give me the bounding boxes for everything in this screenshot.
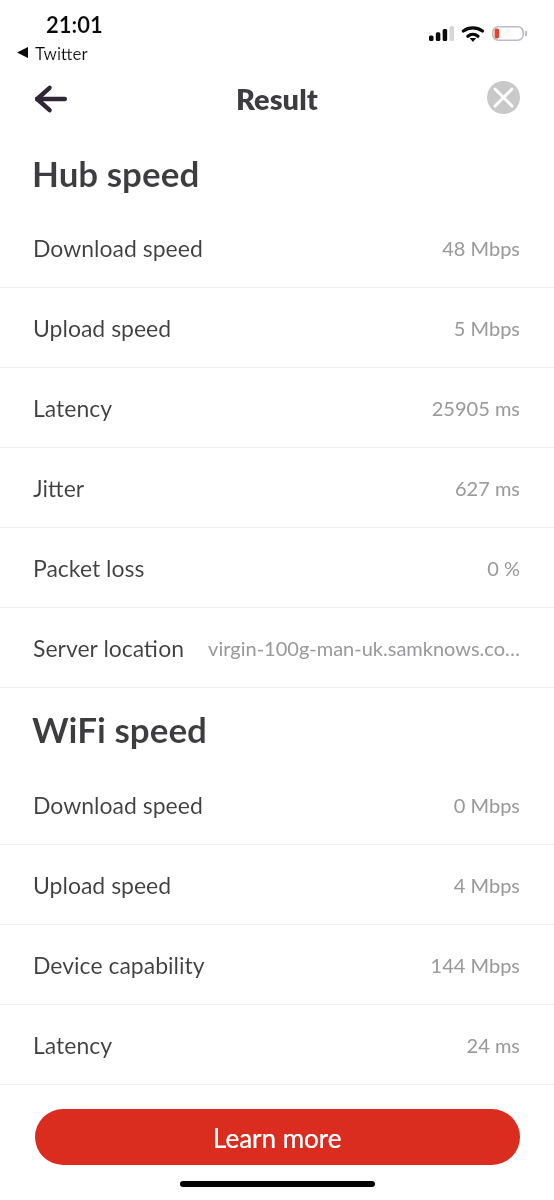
staticText: Jitter (33, 474, 85, 502)
staticText: Device capability (33, 951, 205, 979)
button[interactable]: Upload speed (0, 288, 554, 367)
staticText: Download speed (33, 791, 203, 819)
button[interactable]: Close (487, 81, 520, 114)
staticText: 0 % (487, 556, 520, 580)
staticText: Download speed (33, 234, 203, 262)
staticText: Twitter (35, 43, 88, 63)
staticText: 4 Mbps (453, 873, 520, 897)
staticText: Packet loss (33, 554, 145, 582)
staticText: 21:01 (46, 11, 103, 37)
staticText: 0 Mbps (453, 793, 520, 817)
staticText: 24 ms (466, 1033, 520, 1057)
staticText: Upload speed (33, 314, 172, 342)
staticText: 48 Mbps (442, 236, 520, 260)
staticText: 144 Mbps (430, 953, 520, 977)
staticText: Server location (33, 634, 185, 662)
staticText: 627 ms (454, 476, 520, 500)
button[interactable]: Upload speed (0, 845, 554, 924)
button[interactable]: Download speed (0, 765, 554, 844)
staticText: WiFi speed (32, 708, 207, 750)
staticText: Upload speed (33, 871, 172, 899)
staticText: 5 Mbps (453, 316, 520, 340)
button[interactable]: Latency (0, 1005, 554, 1084)
button[interactable]: Packet loss (0, 528, 554, 607)
staticText: Hub speed (32, 152, 200, 194)
button[interactable]: Device capability (0, 925, 554, 1004)
staticText: 25905 ms (431, 396, 520, 420)
staticText: Result (236, 81, 318, 116)
staticText: Latency (33, 1031, 113, 1059)
button[interactable]: Latency (0, 368, 554, 447)
staticText: virgin-100g-man-uk.samknows.co… (208, 636, 520, 660)
button[interactable]: Back (21, 73, 80, 124)
staticText: Learn more (213, 1122, 342, 1153)
button[interactable]: Learn more (35, 1109, 520, 1165)
button[interactable]: Server location (0, 608, 554, 687)
button[interactable]: Download speed (0, 208, 554, 287)
button[interactable]: Jitter (0, 448, 554, 527)
staticText: Latency (33, 394, 113, 422)
